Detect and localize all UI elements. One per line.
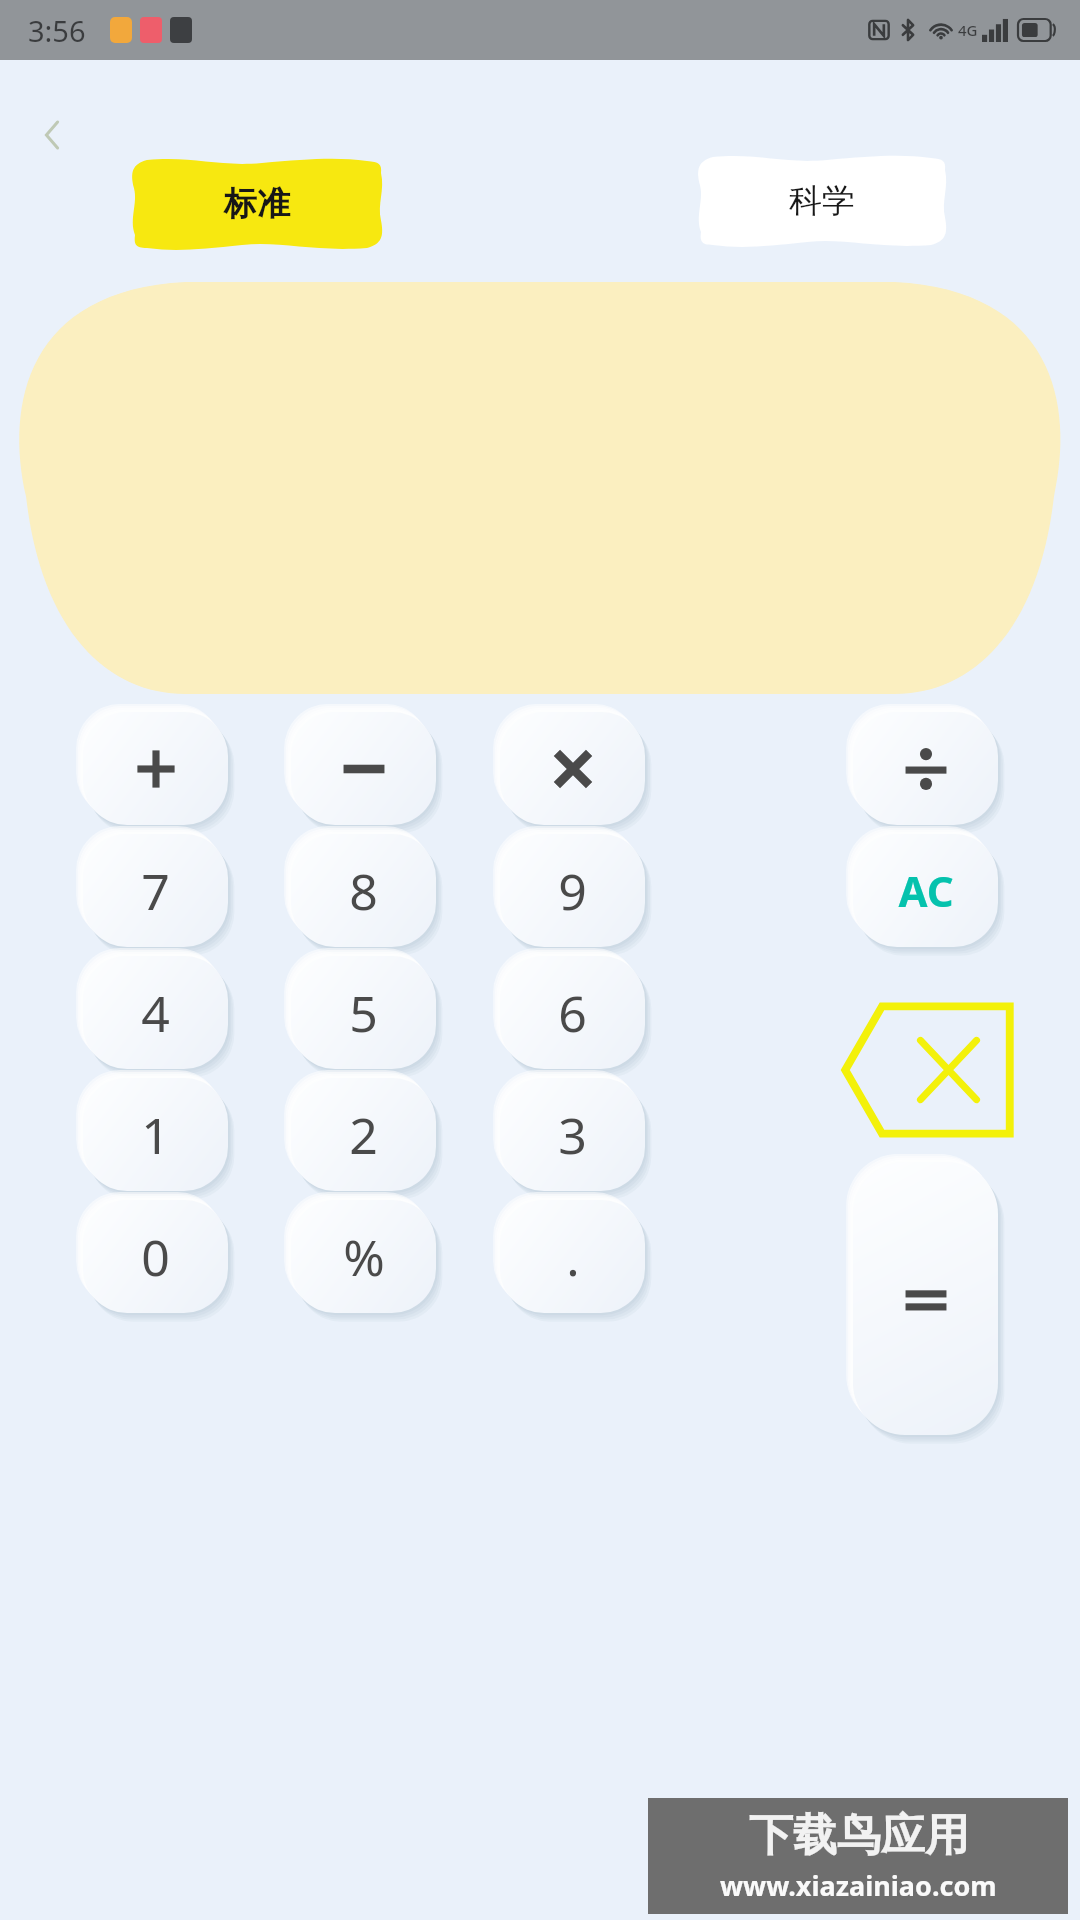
button[interactable]: Multiply [486,698,659,839]
button[interactable]: 5 [277,942,450,1083]
staticText: 科学 [789,180,855,222]
button[interactable]: Plus [69,698,242,839]
button[interactable]: 科学 [698,155,946,247]
staticText: 标准 [224,183,290,225]
button[interactable]: 8 [277,820,450,961]
staticText: 2 [349,1101,378,1169]
staticText: 1 [141,1101,170,1169]
button[interactable]: 1 [69,1064,242,1205]
button[interactable]: 标准 [132,158,382,250]
button[interactable]: 7 [69,820,242,961]
staticText: 下载鸟应用 [749,1808,969,1863]
staticText: 7 [141,857,170,925]
button[interactable]: Divide [839,698,1012,839]
staticText: www.xiazainiao.com [720,1867,997,1904]
staticText: 8 [349,857,378,925]
button[interactable]: Minus [277,698,450,839]
button[interactable]: 6 [486,942,659,1083]
staticText: 4G [958,20,978,40]
staticText: % [343,1223,385,1291]
staticText: 3:56 [28,11,86,50]
staticText: 4 [141,979,170,1047]
button[interactable]: Equals [839,1148,1012,1449]
staticText: 9 [558,857,587,925]
staticText: 5 [349,979,378,1047]
button[interactable]: AC [839,820,1012,961]
button[interactable]: . [486,1186,659,1327]
staticText: 0 [141,1223,170,1291]
button[interactable]: Backspace [830,990,1025,1150]
staticText: 3 [558,1101,587,1169]
staticText: 6 [558,979,587,1047]
staticText: AC [898,862,954,919]
button[interactable]: 0 [69,1186,242,1327]
button[interactable]: 2 [277,1064,450,1205]
button[interactable]: 9 [486,820,659,961]
staticText: . [566,1223,580,1291]
button[interactable]: 3 [486,1064,659,1205]
button[interactable]: 4 [69,942,242,1083]
button[interactable]: % [277,1186,450,1327]
button[interactable]: Back [34,112,70,158]
